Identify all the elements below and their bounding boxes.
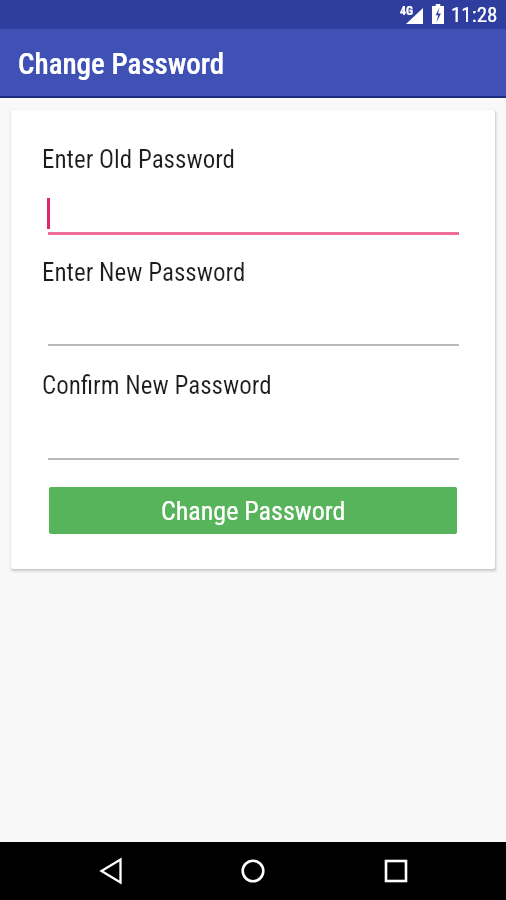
staticText: Confirm New Password bbox=[42, 371, 272, 400]
staticText: Enter Old Password bbox=[42, 145, 235, 174]
button[interactable]: Confirm New Password bbox=[42, 362, 459, 460]
staticText: Change Password bbox=[161, 496, 346, 526]
staticText: Enter New Password bbox=[42, 258, 246, 287]
button[interactable]: Back bbox=[88, 847, 136, 895]
button[interactable]: Enter New Password bbox=[42, 249, 459, 346]
button[interactable]: Recents bbox=[372, 847, 420, 895]
staticText: 11:28 bbox=[451, 3, 498, 28]
button[interactable]: Home bbox=[229, 847, 277, 895]
staticText: 4G bbox=[400, 4, 414, 18]
staticText: Change Password bbox=[18, 47, 225, 81]
button[interactable]: Enter Old Password bbox=[42, 136, 459, 235]
button[interactable]: Change Password bbox=[49, 487, 457, 534]
